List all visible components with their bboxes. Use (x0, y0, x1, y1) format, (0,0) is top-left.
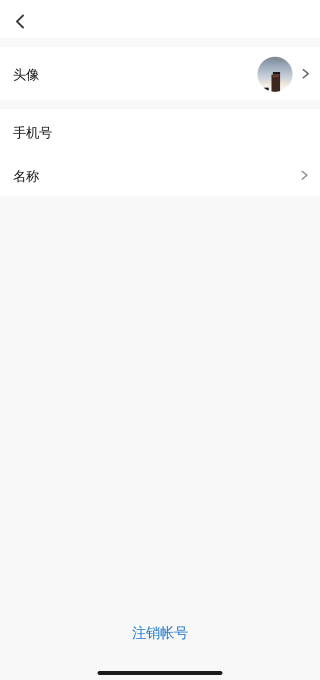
button[interactable]: 注销帐号 (0, 618, 320, 648)
button[interactable]: 手机号 (0, 109, 320, 152)
staticText: 头像 (13, 66, 39, 83)
staticText: 手机号 (13, 124, 52, 141)
button[interactable]: 头像 (0, 47, 320, 100)
button[interactable]: 名称 (0, 152, 320, 196)
staticText: 名称 (13, 168, 39, 185)
button[interactable]: Back (0, 0, 38, 38)
staticText: 注销帐号 (132, 624, 188, 642)
